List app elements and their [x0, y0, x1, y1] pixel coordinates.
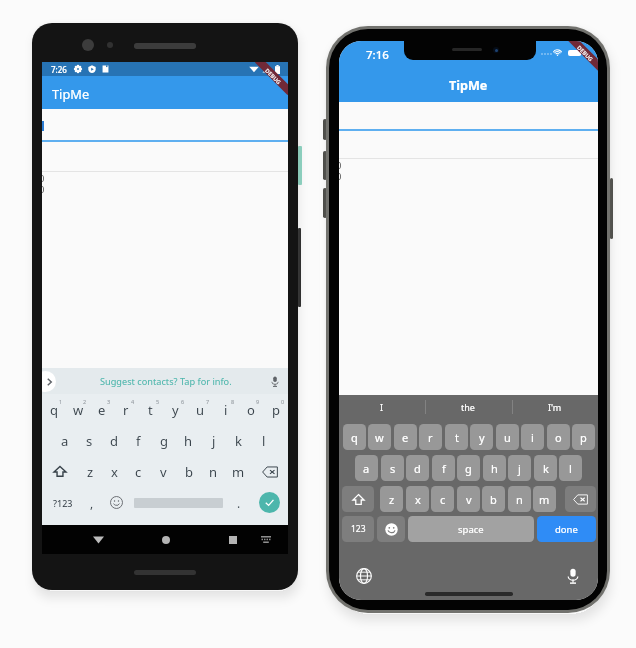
button[interactable]: g: [151, 425, 176, 456]
staticText: q: [50, 401, 58, 419]
staticText: l: [262, 432, 266, 450]
button[interactable]: e: [394, 424, 417, 450]
button[interactable]: e: [90, 394, 114, 425]
button[interactable]: a: [355, 455, 378, 481]
staticText: I'm: [548, 401, 562, 413]
button[interactable]: l: [251, 425, 276, 456]
button[interactable]: Dictation: [562, 565, 584, 587]
button[interactable]: j: [201, 425, 226, 456]
button[interactable]: d: [406, 455, 429, 481]
staticText: ,: [90, 495, 94, 511]
button[interactable]: g: [457, 455, 480, 481]
button[interactable]: w: [368, 424, 391, 450]
button[interactable]: o: [547, 424, 570, 450]
button[interactable]: done: [537, 516, 596, 542]
button[interactable]: space: [408, 516, 534, 542]
button[interactable]: s: [381, 455, 404, 481]
button[interactable]: i: [521, 424, 544, 450]
button[interactable]: Back: [86, 525, 110, 554]
button[interactable]: Shift: [342, 486, 374, 512]
button[interactable]: 123: [342, 516, 374, 542]
button[interactable]: z: [380, 486, 403, 512]
button[interactable]: u: [496, 424, 519, 450]
staticText: x: [111, 463, 118, 481]
button[interactable]: a: [53, 425, 77, 456]
staticText: 0: [42, 172, 45, 185]
button[interactable]: h: [176, 425, 201, 456]
button[interactable]: m: [533, 486, 556, 512]
button[interactable]: Emoji: [377, 516, 405, 542]
button[interactable]: k: [534, 455, 557, 481]
staticText: TipMe: [449, 77, 488, 94]
button[interactable]: Switch keyboard: [257, 525, 275, 554]
button[interactable]: s: [77, 425, 101, 456]
button[interactable]: t: [445, 424, 468, 450]
button[interactable]: I: [339, 395, 425, 419]
button[interactable]: Voice input: [267, 373, 283, 389]
button[interactable]: r: [419, 424, 442, 450]
button[interactable]: z: [78, 456, 102, 487]
button[interactable]: Enter: [256, 487, 283, 518]
button[interactable]: f: [432, 455, 455, 481]
staticText: j: [518, 461, 521, 476]
button[interactable]: k: [226, 425, 251, 456]
button[interactable]: b: [482, 486, 505, 512]
button[interactable]: y: [470, 424, 493, 450]
button[interactable]: l: [559, 455, 582, 481]
staticText: k: [235, 432, 242, 450]
staticText: y: [172, 401, 179, 419]
button[interactable]: y: [163, 394, 188, 425]
button[interactable]: Change keyboard: [353, 565, 375, 587]
staticText: b: [490, 492, 497, 507]
button[interactable]: Backspace: [565, 486, 596, 512]
staticText: r: [428, 430, 433, 445]
button[interactable]: the: [425, 395, 511, 419]
button[interactable]: v: [457, 486, 480, 512]
button[interactable]: Recents: [221, 525, 245, 554]
button[interactable]: v: [151, 456, 176, 487]
button[interactable]: Space: [128, 487, 229, 518]
button[interactable]: m: [226, 456, 251, 487]
button[interactable]: u: [188, 394, 213, 425]
button[interactable]: Shift: [42, 456, 78, 487]
button[interactable]: n: [201, 456, 226, 487]
staticText: 9: [256, 398, 260, 405]
button[interactable]: ?123: [46, 487, 79, 518]
button[interactable]: j: [508, 455, 531, 481]
button[interactable]: d: [101, 425, 126, 456]
button[interactable]: Emoji: [104, 487, 128, 518]
button[interactable]: p: [263, 394, 288, 425]
button[interactable]: w: [66, 394, 90, 425]
button[interactable]: x: [102, 456, 126, 487]
staticText: y: [479, 430, 485, 445]
button[interactable]: i: [213, 394, 238, 425]
button[interactable]: b: [176, 456, 201, 487]
button[interactable]: p: [572, 424, 595, 450]
staticText: .: [237, 495, 241, 511]
button[interactable]: o: [238, 394, 263, 425]
button[interactable]: x: [406, 486, 429, 512]
staticText: e: [98, 401, 106, 419]
button[interactable]: c: [126, 456, 151, 487]
staticText: done: [555, 523, 578, 536]
button[interactable]: Comma: [80, 487, 104, 518]
staticText: the: [461, 401, 475, 413]
button[interactable]: c: [431, 486, 454, 512]
button[interactable]: q: [42, 394, 66, 425]
button[interactable]: n: [508, 486, 531, 512]
staticText: p: [580, 430, 587, 445]
button[interactable]: q: [343, 424, 366, 450]
button[interactable]: t: [138, 394, 163, 425]
staticText: h: [491, 461, 498, 476]
staticText: g: [465, 461, 472, 476]
button[interactable]: f: [126, 425, 151, 456]
button[interactable]: I'm: [512, 395, 598, 419]
staticText: 6: [181, 398, 185, 405]
button[interactable]: h: [483, 455, 506, 481]
button[interactable]: Period: [227, 487, 250, 518]
button[interactable]: r: [114, 394, 138, 425]
button[interactable]: Backspace: [251, 456, 288, 487]
button[interactable]: Home: [154, 525, 178, 554]
staticText: u: [196, 401, 205, 419]
button[interactable]: Expand suggestions: [42, 371, 56, 392]
